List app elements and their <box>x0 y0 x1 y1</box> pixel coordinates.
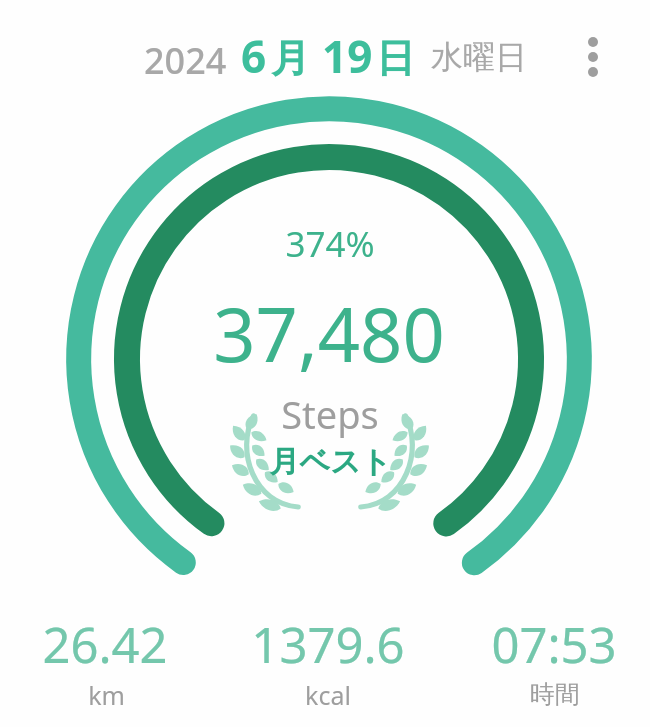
button[interactable]: km <box>0 678 346 712</box>
button[interactable]: kcal <box>88 678 568 712</box>
button[interactable]: 26.42 <box>0 611 345 678</box>
button[interactable]: 時間 <box>315 679 650 710</box>
button[interactable]: Steps <box>90 388 570 440</box>
button[interactable]: 07:53 <box>314 611 650 678</box>
button[interactable]: 37,480 <box>89 283 569 384</box>
staticText: 1379.6 <box>251 611 405 678</box>
staticText: Steps <box>281 388 379 440</box>
staticText: 日 <box>376 34 415 83</box>
staticText: km <box>88 678 125 712</box>
staticText: 月 <box>271 34 310 83</box>
staticText: 6 <box>241 26 267 86</box>
staticText: 2024 <box>144 36 227 85</box>
staticText: 月ベスト <box>269 443 392 481</box>
button[interactable]: 374% <box>90 220 570 268</box>
staticText: 26.42 <box>42 611 168 678</box>
button[interactable]: 1379.6 <box>88 611 568 678</box>
button[interactable]: 月ベスト <box>90 443 570 481</box>
button[interactable]: More options <box>565 29 621 85</box>
staticText: 374% <box>285 220 375 268</box>
staticText: 07:53 <box>491 611 617 678</box>
staticText: 37,480 <box>213 283 445 384</box>
staticText: 19 <box>322 26 373 86</box>
staticText: 時間 <box>530 679 580 710</box>
staticText: 水曜日 <box>431 37 527 77</box>
staticText: kcal <box>305 678 351 712</box>
button[interactable] <box>100 20 570 92</box>
